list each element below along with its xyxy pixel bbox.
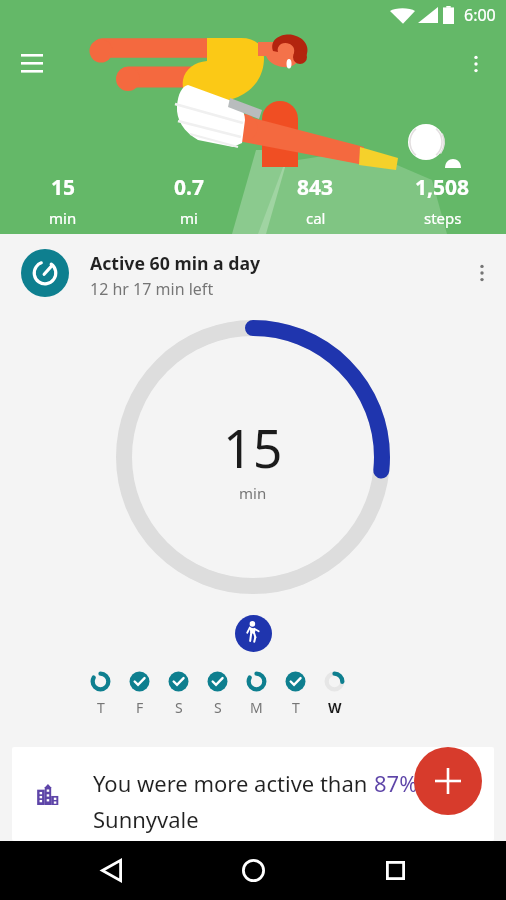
staticText: mi (180, 208, 198, 228)
button[interactable]: Start workout (235, 615, 272, 652)
button[interactable]: Menu (8, 40, 56, 88)
button[interactable]: 843 (252, 173, 379, 228)
staticText: 0.7 (174, 173, 204, 202)
button[interactable]: W (315, 671, 354, 717)
staticText: 843 (297, 173, 334, 202)
button[interactable]: Add activity (414, 747, 482, 815)
button[interactable]: F (120, 671, 159, 717)
staticText: 15 (51, 173, 76, 202)
staticText: W (328, 698, 342, 717)
staticText: S (175, 698, 183, 717)
staticText: Sunnyvale (93, 804, 199, 834)
staticText: 87% (374, 768, 418, 798)
staticText: F (136, 698, 144, 717)
button[interactable]: 0.7 (126, 173, 252, 228)
button[interactable]: 1,508 (379, 173, 506, 228)
staticText: 6:00 (464, 4, 496, 26)
staticText: T (292, 698, 300, 717)
button[interactable]: T (276, 671, 315, 717)
staticText: cal (306, 208, 326, 228)
staticText: Active 60 min a day (90, 251, 261, 275)
staticText: T (97, 698, 105, 717)
staticText: S (214, 698, 222, 717)
staticText: steps (424, 208, 462, 228)
button[interactable]: S (159, 671, 198, 717)
staticText: 12 hr 17 min left (90, 278, 214, 300)
button[interactable]: 15 (0, 173, 126, 228)
button[interactable]: S (198, 671, 237, 717)
staticText: 1,508 (415, 173, 470, 202)
button[interactable]: Recents (371, 846, 419, 894)
button[interactable]: Active 60 min a day (0, 234, 506, 312)
staticText: You were more active than (93, 768, 374, 798)
button[interactable]: More options (452, 40, 500, 88)
button[interactable]: Back (87, 846, 135, 894)
staticText: 15 (223, 412, 283, 483)
button[interactable]: Home (229, 846, 277, 894)
button[interactable]: More options (458, 249, 506, 297)
button[interactable]: T (81, 671, 120, 717)
staticText: min (239, 483, 267, 503)
button[interactable]: M (237, 671, 276, 717)
staticText: M (250, 698, 263, 717)
button[interactable]: You were more active than (12, 747, 494, 841)
staticText: min (49, 208, 77, 228)
